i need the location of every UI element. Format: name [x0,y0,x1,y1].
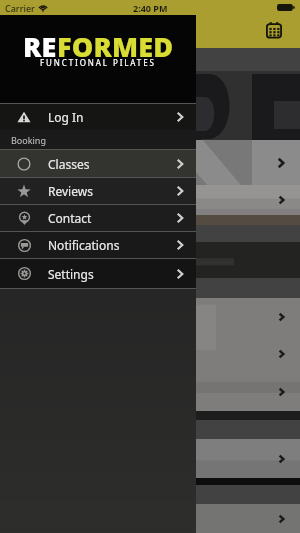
staticText: Carrier [5,2,35,14]
staticText: MON 01 [14,281,58,296]
staticText: Notifications [48,237,120,253]
staticText: Contact [48,210,92,226]
button[interactable] [0,225,300,242]
button[interactable] [0,478,300,485]
button[interactable] [0,158,300,168]
button[interactable]: Calendar [263,19,285,41]
staticText: 2:40 PM [133,2,168,14]
staticText: Booking [11,134,46,146]
staticText: Reviews [48,183,93,199]
button[interactable]: Log In [0,104,196,130]
button[interactable] [0,215,300,225]
button[interactable] [0,298,300,411]
button[interactable]: Classes [0,150,196,177]
staticText: RE [23,28,57,65]
button[interactable]: Contact [0,205,196,231]
staticText: Settings [48,266,94,282]
staticText: SUN 30 [14,52,53,67]
button[interactable] [0,411,300,420]
button[interactable]: Settings [0,259,196,288]
button[interactable] [0,140,300,185]
button[interactable] [0,242,300,278]
button[interactable] [0,504,300,533]
button[interactable]: Reviews [0,178,196,204]
staticText: FORMED [57,28,174,65]
staticText: Log In [48,109,84,125]
staticText: FUNCTIONAL PILATES [40,57,156,68]
staticText: Classes [48,156,90,172]
button[interactable] [0,71,300,140]
button[interactable]: Notifications [0,232,196,258]
button[interactable] [0,439,300,478]
button[interactable] [0,185,300,215]
